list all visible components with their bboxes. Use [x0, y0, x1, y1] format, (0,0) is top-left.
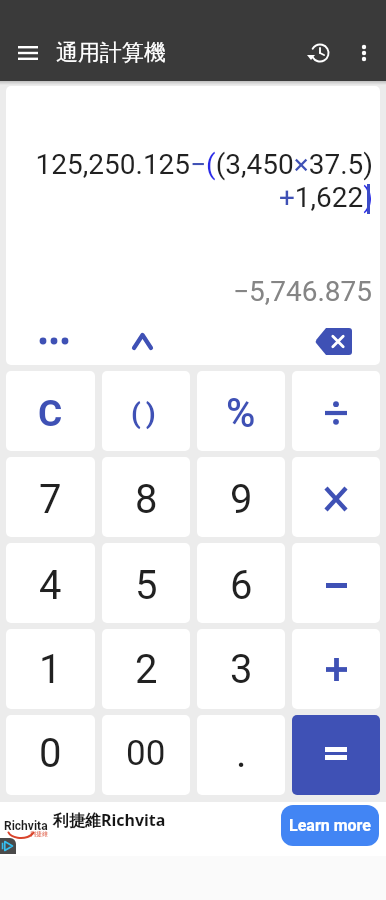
button[interactable]: Learn more	[281, 805, 379, 846]
button[interactable]: .	[197, 715, 285, 795]
staticText: 利捷維	[30, 830, 48, 838]
button[interactable]: 8	[102, 457, 190, 537]
staticText: Richvita	[4, 819, 48, 833]
staticText: Learn more	[289, 816, 371, 835]
button[interactable]	[292, 715, 380, 795]
button[interactable]	[299, 321, 367, 361]
button[interactable]	[292, 629, 380, 709]
button[interactable]	[14, 321, 94, 361]
staticText: 00	[126, 733, 166, 774]
staticText: 6	[230, 562, 253, 609]
staticText: ()	[131, 397, 161, 430]
staticText: C	[38, 392, 63, 435]
staticText: 4	[39, 562, 62, 609]
staticText: 1	[39, 646, 62, 693]
button[interactable]: 2	[102, 629, 190, 709]
button[interactable]: %	[197, 371, 285, 451]
button[interactable]	[0, 25, 56, 81]
staticText: 0	[39, 730, 62, 777]
button[interactable]	[292, 543, 380, 623]
button[interactable]: 5	[102, 543, 190, 623]
button[interactable]	[292, 457, 380, 537]
button[interactable]: ()	[102, 371, 190, 451]
staticText: 5	[135, 562, 158, 609]
staticText: +1,622)	[278, 181, 373, 214]
button[interactable]	[110, 321, 174, 361]
button[interactable]: 6	[197, 543, 285, 623]
button[interactable]: C	[6, 371, 95, 451]
button[interactable]: 3	[197, 629, 285, 709]
button[interactable]	[292, 371, 380, 451]
staticText: .	[236, 730, 247, 777]
button[interactable]: 7	[6, 457, 95, 537]
staticText: 3	[230, 646, 253, 693]
button[interactable]: 4	[6, 543, 95, 623]
staticText: 125,250.125−((3,450×37.5)	[35, 148, 373, 181]
button[interactable]: 00	[102, 715, 190, 795]
staticText: 8	[135, 476, 158, 523]
staticText: 2	[135, 646, 158, 693]
staticText: 通用計算機	[56, 39, 166, 67]
button[interactable]: 0	[6, 715, 95, 795]
button[interactable]: 1	[6, 629, 95, 709]
button[interactable]: 9	[197, 457, 285, 537]
staticText: %	[226, 390, 256, 437]
staticText: 利捷維Richvita	[53, 809, 166, 831]
staticText: 7	[39, 476, 62, 523]
button[interactable]	[297, 31, 341, 75]
staticText: −5,746.875	[233, 275, 373, 308]
button[interactable]	[341, 25, 386, 81]
staticText: 9	[230, 476, 253, 523]
